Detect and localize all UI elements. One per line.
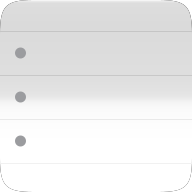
button[interactable]: List item (0, 31, 192, 75)
button[interactable]: List item (0, 119, 192, 163)
button[interactable]: List item (0, 75, 192, 119)
